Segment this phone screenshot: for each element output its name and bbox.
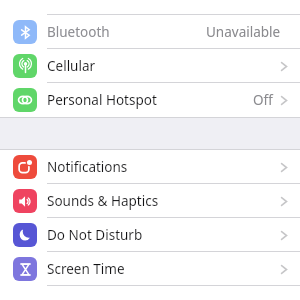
staticText: Sounds & Haptics bbox=[47, 192, 159, 210]
staticText: Off bbox=[253, 91, 273, 109]
button[interactable]: Do Not Disturb bbox=[0, 218, 300, 252]
other: Open bbox=[280, 94, 288, 107]
button[interactable]: Notifications bbox=[0, 150, 300, 184]
other: Open bbox=[280, 161, 288, 174]
staticText: Unavailable bbox=[206, 23, 281, 41]
other: Open bbox=[280, 60, 288, 73]
other: Open bbox=[280, 263, 288, 276]
other: Open bbox=[280, 195, 288, 208]
staticText: Do Not Disturb bbox=[47, 226, 143, 244]
button[interactable]: Wi-Fi bbox=[0, 0, 300, 15]
button[interactable]: Screen Time bbox=[0, 252, 300, 286]
button[interactable]: Bluetooth bbox=[0, 15, 300, 49]
staticText: Bluetooth bbox=[47, 23, 110, 41]
button[interactable]: Sounds & Haptics bbox=[0, 184, 300, 218]
button[interactable]: Cellular bbox=[0, 49, 300, 83]
staticText: Cellular bbox=[47, 57, 96, 75]
button[interactable]: Personal Hotspot bbox=[0, 83, 300, 117]
staticText: Notifications bbox=[47, 158, 128, 176]
staticText: Personal Hotspot bbox=[47, 91, 157, 109]
other: Open bbox=[280, 229, 288, 242]
staticText: Screen Time bbox=[47, 260, 125, 278]
